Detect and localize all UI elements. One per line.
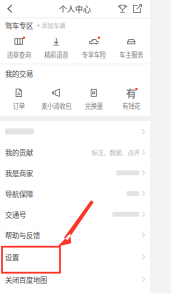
staticText: 兑换量 [85,101,103,110]
staticText: 专享车险 [82,50,106,59]
button[interactable]: 麦小清收包 [37,89,75,109]
button[interactable]: 违章查询 [0,38,37,58]
staticText: 驾车专区 [5,20,33,30]
button[interactable]: 导航保障 [0,183,150,204]
staticText: 麦小清收包 [41,101,71,110]
button[interactable]: 帮助与反馈 [0,225,150,245]
button[interactable]: 专享车险 [75,38,112,58]
button[interactable]: 编辑 [130,0,145,18]
button[interactable]: 交通号 [0,204,150,225]
button[interactable]: 关闭百度地图 [0,268,150,290]
staticText: 精彩语音 [44,50,68,59]
staticText: + [36,20,40,30]
staticText: 个人中心 [59,3,91,14]
staticText: 有 [126,85,137,100]
button[interactable] [0,121,150,142]
button[interactable]: 精彩语音 [37,38,75,58]
staticText: 设置 [5,252,19,262]
button[interactable]: 我是商家 [0,162,150,183]
button[interactable]: 成就 [115,0,130,18]
button[interactable]: 设置 [0,245,150,268]
staticText: 我的交易 [5,68,33,78]
staticText: 添加车辆 [41,21,65,29]
button[interactable]: 有 [112,89,150,109]
staticText: 标注、数据、点评 [91,148,139,157]
staticText: 导航保障 [5,188,33,199]
button[interactable]: 返回 [2,0,18,18]
staticText: 我的贡献 [5,147,33,157]
staticText: 有钱花 [122,101,140,110]
button[interactable]: + [36,20,65,30]
staticText: 订单 [13,101,25,110]
button[interactable]: 兑换量 [75,89,112,109]
staticText: 交通号 [5,209,26,219]
button[interactable]: 车主服务 [112,38,150,58]
staticText: 违章查询 [7,50,31,59]
button[interactable]: 订单 [0,89,37,109]
staticText: 车主服务 [119,50,143,59]
staticText: 帮助与反馈 [5,230,40,240]
staticText: 我是商家 [5,168,33,178]
staticText: 关闭百度地图 [5,274,47,284]
button[interactable]: 我的贡献 [0,142,150,162]
